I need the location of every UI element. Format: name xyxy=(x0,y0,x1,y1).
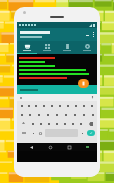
button[interactable] xyxy=(30,129,37,137)
button[interactable]: Tab xyxy=(57,41,77,53)
button[interactable] xyxy=(69,119,77,128)
button[interactable]: Overflow menu xyxy=(92,31,95,39)
button[interactable]: Home xyxy=(47,144,54,151)
button[interactable] xyxy=(79,110,88,119)
button[interactable] xyxy=(88,101,96,110)
button[interactable]: Backspace xyxy=(85,119,96,128)
button[interactable] xyxy=(17,54,97,85)
button[interactable] xyxy=(53,119,61,128)
button[interactable] xyxy=(64,101,72,110)
button[interactable] xyxy=(18,101,25,110)
button[interactable]: Emoji xyxy=(37,129,44,137)
button[interactable] xyxy=(61,119,69,128)
button[interactable]: Tab xyxy=(37,41,57,53)
button[interactable]: Recents xyxy=(66,144,73,151)
button[interactable] xyxy=(34,110,43,119)
button[interactable] xyxy=(43,110,52,119)
button[interactable]: Shift xyxy=(18,119,29,128)
button[interactable]: Tab xyxy=(77,41,97,53)
button[interactable]: Symbols xyxy=(18,129,30,137)
button[interactable] xyxy=(70,110,79,119)
button[interactable] xyxy=(56,101,64,110)
button[interactable] xyxy=(52,110,61,119)
button[interactable] xyxy=(80,101,88,110)
button[interactable] xyxy=(37,119,45,128)
button[interactable] xyxy=(77,119,85,128)
button[interactable] xyxy=(72,101,80,110)
button[interactable] xyxy=(40,101,48,110)
button[interactable]: Keyboard xyxy=(85,145,90,149)
button[interactable]: Voice input xyxy=(91,96,94,99)
button[interactable] xyxy=(48,101,56,110)
button[interactable] xyxy=(45,119,53,128)
button[interactable] xyxy=(18,110,26,119)
button[interactable] xyxy=(25,101,32,110)
button[interactable] xyxy=(32,101,40,110)
button[interactable] xyxy=(79,129,86,137)
button[interactable] xyxy=(88,110,97,119)
button[interactable]: Enter xyxy=(87,130,95,136)
button[interactable]: Send command xyxy=(78,79,89,88)
button[interactable]: More options xyxy=(85,34,90,37)
button[interactable] xyxy=(61,110,70,119)
button[interactable]: Back xyxy=(28,144,35,151)
button[interactable] xyxy=(29,119,37,128)
button[interactable] xyxy=(26,110,34,119)
button[interactable]: Shell tab xyxy=(17,41,37,53)
button[interactable] xyxy=(17,85,97,94)
